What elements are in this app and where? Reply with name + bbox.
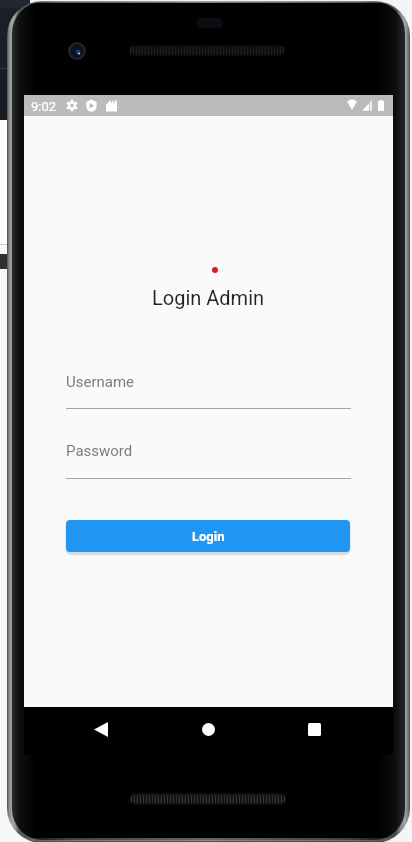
- button[interactable]: Username: [66, 373, 351, 409]
- button[interactable]: Recent apps: [284, 707, 344, 751]
- staticText: 9:02: [31, 99, 57, 114]
- staticText: Login: [192, 529, 225, 544]
- button[interactable]: Home: [178, 707, 238, 751]
- staticText: Username: [66, 373, 135, 391]
- staticText: Password: [66, 442, 133, 460]
- staticText: Login Admin: [152, 286, 265, 309]
- button[interactable]: Login: [66, 520, 350, 552]
- button[interactable]: Back: [71, 707, 131, 751]
- button[interactable]: Password: [66, 442, 351, 479]
